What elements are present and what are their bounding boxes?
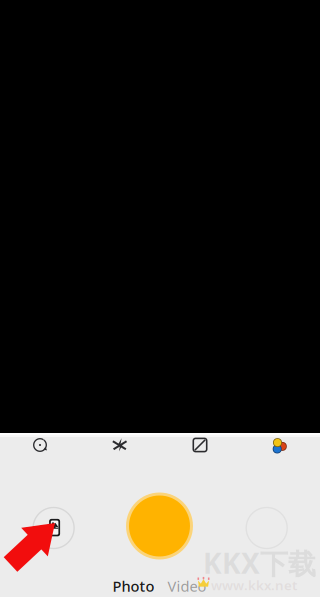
staticText: Photo: [113, 576, 155, 596]
button[interactable]: Take photo: [121, 488, 197, 564]
button[interactable]: Switch camera: [231, 492, 303, 564]
button[interactable]: Video: [165, 577, 209, 595]
button[interactable]: Photo: [112, 577, 156, 595]
button[interactable]: Filters: [240, 434, 320, 456]
button[interactable]: Timer: [0, 434, 80, 456]
button[interactable]: Photo library: [18, 492, 90, 564]
staticText: Video: [167, 576, 206, 596]
button[interactable]: HDR: [160, 434, 240, 456]
button[interactable]: Flash off: [80, 434, 160, 456]
staticText: KKX下载: [203, 544, 316, 582]
staticText: www.kkx.net: [211, 576, 297, 594]
